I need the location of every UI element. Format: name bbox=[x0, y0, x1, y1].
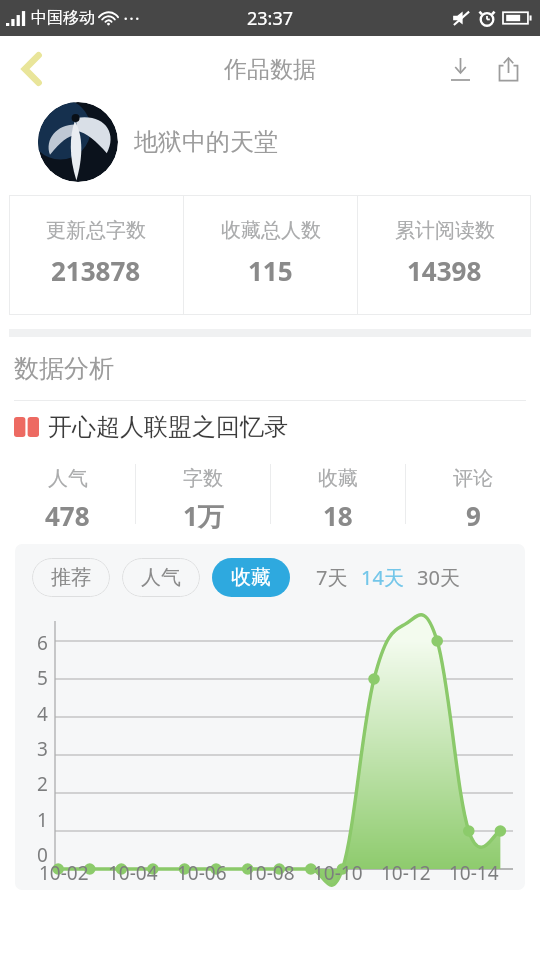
staticText: 10-06 bbox=[177, 860, 227, 886]
staticText: 213878 bbox=[51, 253, 141, 288]
staticText: 中国移动 bbox=[31, 8, 95, 28]
staticText: 478 bbox=[45, 498, 90, 530]
button[interactable]: 开心超人联盟之回忆录 bbox=[0, 401, 540, 452]
staticText: 作品数据 bbox=[224, 55, 316, 84]
staticText: 收藏 bbox=[318, 466, 358, 491]
button[interactable]: 14天 bbox=[359, 558, 406, 597]
staticText: 1万 bbox=[183, 498, 224, 530]
staticText: 4 bbox=[37, 701, 48, 727]
button[interactable]: Share bbox=[484, 45, 532, 93]
staticText: 10-12 bbox=[381, 860, 431, 886]
staticText: 30天 bbox=[417, 564, 460, 591]
staticText: 2 bbox=[37, 771, 48, 797]
button[interactable]: 更新总字数 bbox=[9, 195, 183, 315]
staticText: 6 bbox=[37, 630, 48, 656]
staticText: 10-10 bbox=[313, 860, 363, 886]
staticText: 14398 bbox=[407, 253, 482, 288]
staticText: 人气 bbox=[48, 466, 88, 491]
staticText: 3 bbox=[37, 736, 48, 762]
button[interactable]: 7天 bbox=[314, 558, 350, 597]
staticText: 10-04 bbox=[108, 860, 158, 886]
staticText: 累计阅读数 bbox=[395, 218, 495, 243]
button[interactable]: Author avatar bbox=[38, 102, 118, 182]
button[interactable]: 累计阅读数 bbox=[358, 195, 531, 315]
staticText: 字数 bbox=[183, 466, 223, 491]
staticText: 评论 bbox=[453, 466, 493, 491]
button[interactable]: 人气 bbox=[122, 558, 200, 597]
button[interactable]: 人气 bbox=[0, 458, 135, 530]
staticText: 1 bbox=[37, 807, 48, 833]
staticText: 10-08 bbox=[245, 860, 295, 886]
staticText: 开心超人联盟之回忆录 bbox=[48, 412, 288, 442]
staticText: 数据分析 bbox=[14, 353, 114, 384]
staticText: 地狱中的天堂 bbox=[134, 127, 278, 157]
staticText: 收藏总人数 bbox=[221, 218, 321, 243]
staticText: 收藏 bbox=[231, 565, 271, 590]
button[interactable]: 评论 bbox=[406, 458, 540, 530]
button[interactable]: 字数 bbox=[136, 458, 270, 530]
staticText: 10-14 bbox=[449, 860, 499, 886]
button[interactable]: Download bbox=[436, 45, 484, 93]
staticText: 14天 bbox=[361, 564, 404, 591]
staticText: 23:37 bbox=[247, 6, 294, 31]
staticText: 5 bbox=[37, 665, 48, 691]
staticText: 人气 bbox=[141, 565, 181, 590]
button[interactable]: Back bbox=[6, 43, 58, 95]
button[interactable]: 30天 bbox=[415, 558, 462, 597]
staticText: 推荐 bbox=[51, 565, 91, 590]
staticText: 0 bbox=[37, 842, 48, 868]
staticText: 更新总字数 bbox=[46, 218, 146, 243]
button[interactable]: 收藏 bbox=[271, 458, 405, 530]
staticText: 9 bbox=[466, 498, 481, 530]
staticText: 7天 bbox=[316, 564, 348, 591]
staticText: 115 bbox=[248, 253, 293, 288]
button[interactable]: 收藏 bbox=[212, 558, 290, 597]
staticText: 10-02 bbox=[39, 860, 89, 886]
staticText: 18 bbox=[323, 498, 353, 530]
button[interactable]: 收藏总人数 bbox=[184, 195, 357, 315]
button[interactable]: 推荐 bbox=[32, 558, 110, 597]
